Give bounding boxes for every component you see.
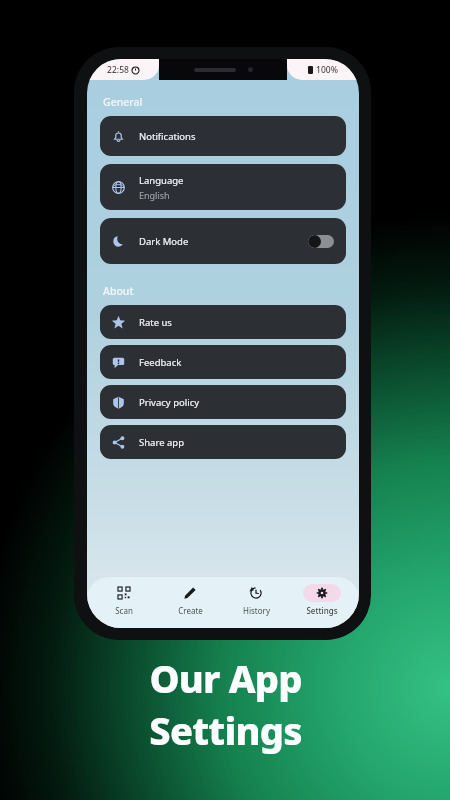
staticText: Dark Mode [139,235,189,248]
button[interactable] [308,235,334,248]
other: History [250,587,262,599]
staticText: Language [139,174,184,187]
staticText: Notifications [139,130,196,143]
button[interactable]: Dark Mode [100,218,346,264]
staticText: Our App [149,652,302,704]
staticText: General [103,95,143,109]
staticText: English [139,189,170,201]
button[interactable]: Share app [100,425,346,459]
staticText: Privacy policy [139,396,200,409]
button[interactable]: Create [161,584,219,616]
staticText: Rate us [139,316,172,329]
staticText: Create [178,605,203,616]
other: Scan [118,587,130,599]
button[interactable]: History [227,584,285,616]
staticText: Share app [139,436,184,449]
staticText: Settings [306,605,338,616]
staticText: 100% [316,64,338,76]
button[interactable]: Language [100,164,346,210]
staticText: Feedback [139,356,182,369]
staticText: About [103,284,134,298]
button[interactable]: Rate us [100,305,346,339]
staticText: Scan [115,605,133,616]
button[interactable]: Feedback [100,345,346,379]
button[interactable]: Notifications [100,116,346,156]
staticText: 22:58 [107,64,129,76]
staticText: History [243,605,270,616]
button[interactable]: Scan [95,584,153,616]
staticText: Settings [149,704,302,756]
button[interactable]: Privacy policy [100,385,346,419]
button[interactable]: Settings [293,584,351,616]
other: Create [184,587,196,599]
other: Settings [316,587,328,599]
